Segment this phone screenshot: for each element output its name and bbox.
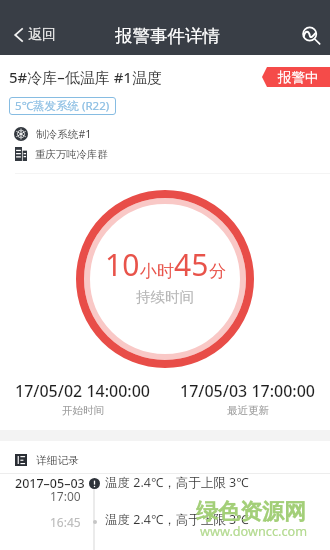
- staticText: 绿色资源网: [196, 498, 306, 526]
- staticText: 温度 2.4℃，高于上限 3℃: [105, 511, 249, 528]
- button[interactable]: 详细记录: [0, 446, 330, 474]
- staticText: 详细记录: [36, 454, 79, 467]
- button[interactable]: 报警中: [262, 67, 330, 87]
- staticText: 16:45: [50, 514, 81, 530]
- button[interactable]: 返回: [0, 14, 66, 55]
- staticText: 5℃蒸发系统 (R22): [15, 98, 110, 114]
- staticText: 重庆万吨冷库群: [35, 148, 108, 161]
- button[interactable]: 查看曲线: [292, 14, 330, 55]
- staticText: 最近更新: [227, 404, 269, 417]
- staticText: 17/05/02 14:00:00: [15, 380, 151, 402]
- staticText: 小时: [140, 261, 174, 282]
- staticText: 开始时间: [62, 404, 104, 417]
- staticText: 5#冷库–低温库 #1温度: [9, 67, 162, 87]
- staticText: 分: [209, 261, 226, 282]
- staticText: 持续时间: [136, 288, 194, 306]
- staticText: 2017–05–03: [15, 475, 85, 492]
- staticText: 报警中: [278, 69, 319, 86]
- staticText: 温度 2.4℃，高于上限 3℃: [105, 474, 249, 491]
- staticText: 制冷系统#1: [36, 127, 92, 141]
- staticText: 17:00: [50, 488, 81, 504]
- staticText: 45: [174, 244, 209, 285]
- staticText: 报警事件详情: [115, 25, 220, 47]
- staticText: www.downcc.com: [200, 522, 308, 539]
- staticText: 17/05/03 17:00:00: [180, 380, 316, 402]
- staticText: 返回: [28, 26, 56, 44]
- staticText: 10: [105, 244, 140, 285]
